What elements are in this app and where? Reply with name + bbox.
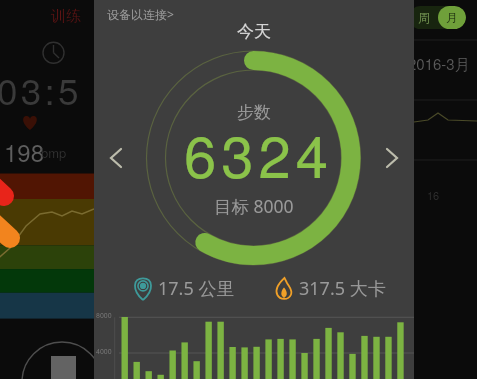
staticText: 8000	[96, 310, 112, 320]
button[interactable]: 317.5 大卡	[272, 276, 386, 301]
staticText: 步数	[237, 102, 271, 123]
staticText: 03:50	[0, 63, 91, 116]
button[interactable]: 17.5 公里	[131, 276, 235, 301]
staticText: 198	[4, 134, 45, 168]
button[interactable]: 设备以连接>	[107, 6, 174, 22]
button[interactable]: Next day	[374, 141, 408, 175]
staticText: 17.5 公里	[158, 276, 235, 301]
staticText: 月	[446, 10, 458, 25]
staticText: 周	[418, 10, 430, 25]
staticText: 设备以连接>	[107, 6, 174, 22]
staticText: 训练	[51, 7, 81, 26]
button[interactable]: 周	[409, 6, 466, 29]
staticText: bmp	[41, 143, 67, 162]
staticText: 4000	[96, 346, 112, 356]
button[interactable]: Previous day	[100, 141, 134, 175]
staticText: 2016-3月	[408, 53, 470, 75]
staticText: 6324	[184, 111, 333, 194]
staticText: 16	[427, 187, 440, 203]
staticText: 317.5 大卡	[299, 276, 386, 301]
staticText: 目标 8000	[214, 194, 294, 218]
staticText: 今天	[237, 21, 271, 42]
